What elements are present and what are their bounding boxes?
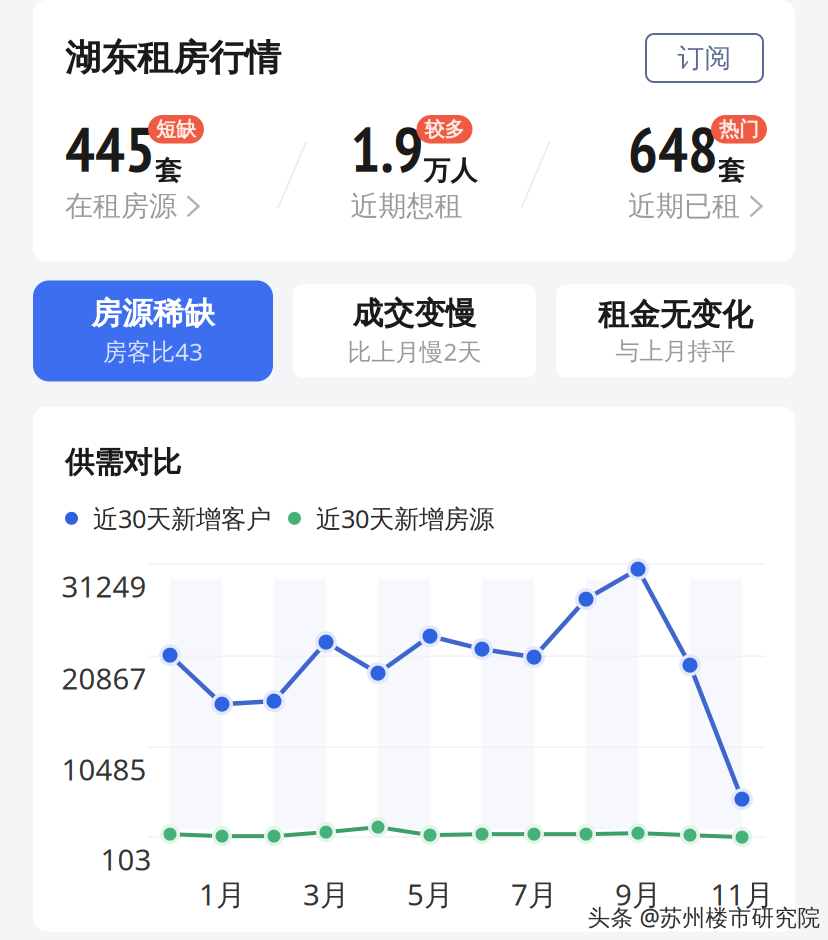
button[interactable]: 成交变慢	[293, 284, 536, 377]
staticText: 比上月慢2天	[347, 335, 481, 367]
staticText: 11月	[710, 875, 773, 914]
staticText: 湖东租房行情	[65, 36, 281, 80]
staticText: 近期已租	[628, 189, 740, 223]
staticText: 套	[155, 154, 182, 187]
staticText: 445	[65, 108, 155, 189]
button[interactable]: 445	[65, 108, 276, 223]
staticText: 头条 @苏州楼市研究院	[587, 902, 820, 932]
staticText: 1月	[199, 875, 245, 914]
staticText: 9月	[615, 875, 661, 914]
staticText: 万人	[423, 154, 477, 187]
button[interactable]: 租金无变化	[556, 284, 795, 377]
button[interactable]: 1.9	[308, 108, 520, 223]
staticText: 房源稀缺	[91, 295, 215, 332]
staticText: 20867	[61, 659, 146, 698]
staticText: 7月	[511, 875, 557, 914]
staticText: 10485	[61, 750, 146, 789]
staticText: 3月	[303, 875, 349, 914]
staticText: 近30天新增客户	[93, 501, 271, 535]
staticText: 5月	[407, 875, 453, 914]
staticText: 成交变慢	[352, 295, 476, 332]
button[interactable]: 648	[552, 108, 763, 223]
staticText: 套	[718, 154, 745, 187]
staticText: 近期想租	[350, 189, 462, 223]
staticText: 较多	[424, 117, 464, 142]
staticText: 31249	[61, 567, 146, 606]
staticText: 短缺	[156, 117, 196, 142]
staticText: 近30天新增房源	[316, 501, 494, 535]
staticText: 订阅	[677, 42, 731, 74]
staticText: 热门	[719, 117, 759, 142]
button[interactable]: 房源稀缺	[33, 280, 273, 381]
staticText: 房客比43	[103, 335, 203, 367]
staticText: 103	[100, 840, 151, 879]
staticText: 1.9	[350, 108, 423, 189]
staticText: 在租房源	[65, 189, 177, 223]
staticText: 租金无变化	[598, 296, 753, 334]
staticText: 与上月持平	[615, 337, 735, 366]
staticText: 648	[628, 108, 718, 189]
button[interactable]: 订阅	[646, 34, 763, 82]
staticText: 供需对比	[65, 444, 181, 480]
